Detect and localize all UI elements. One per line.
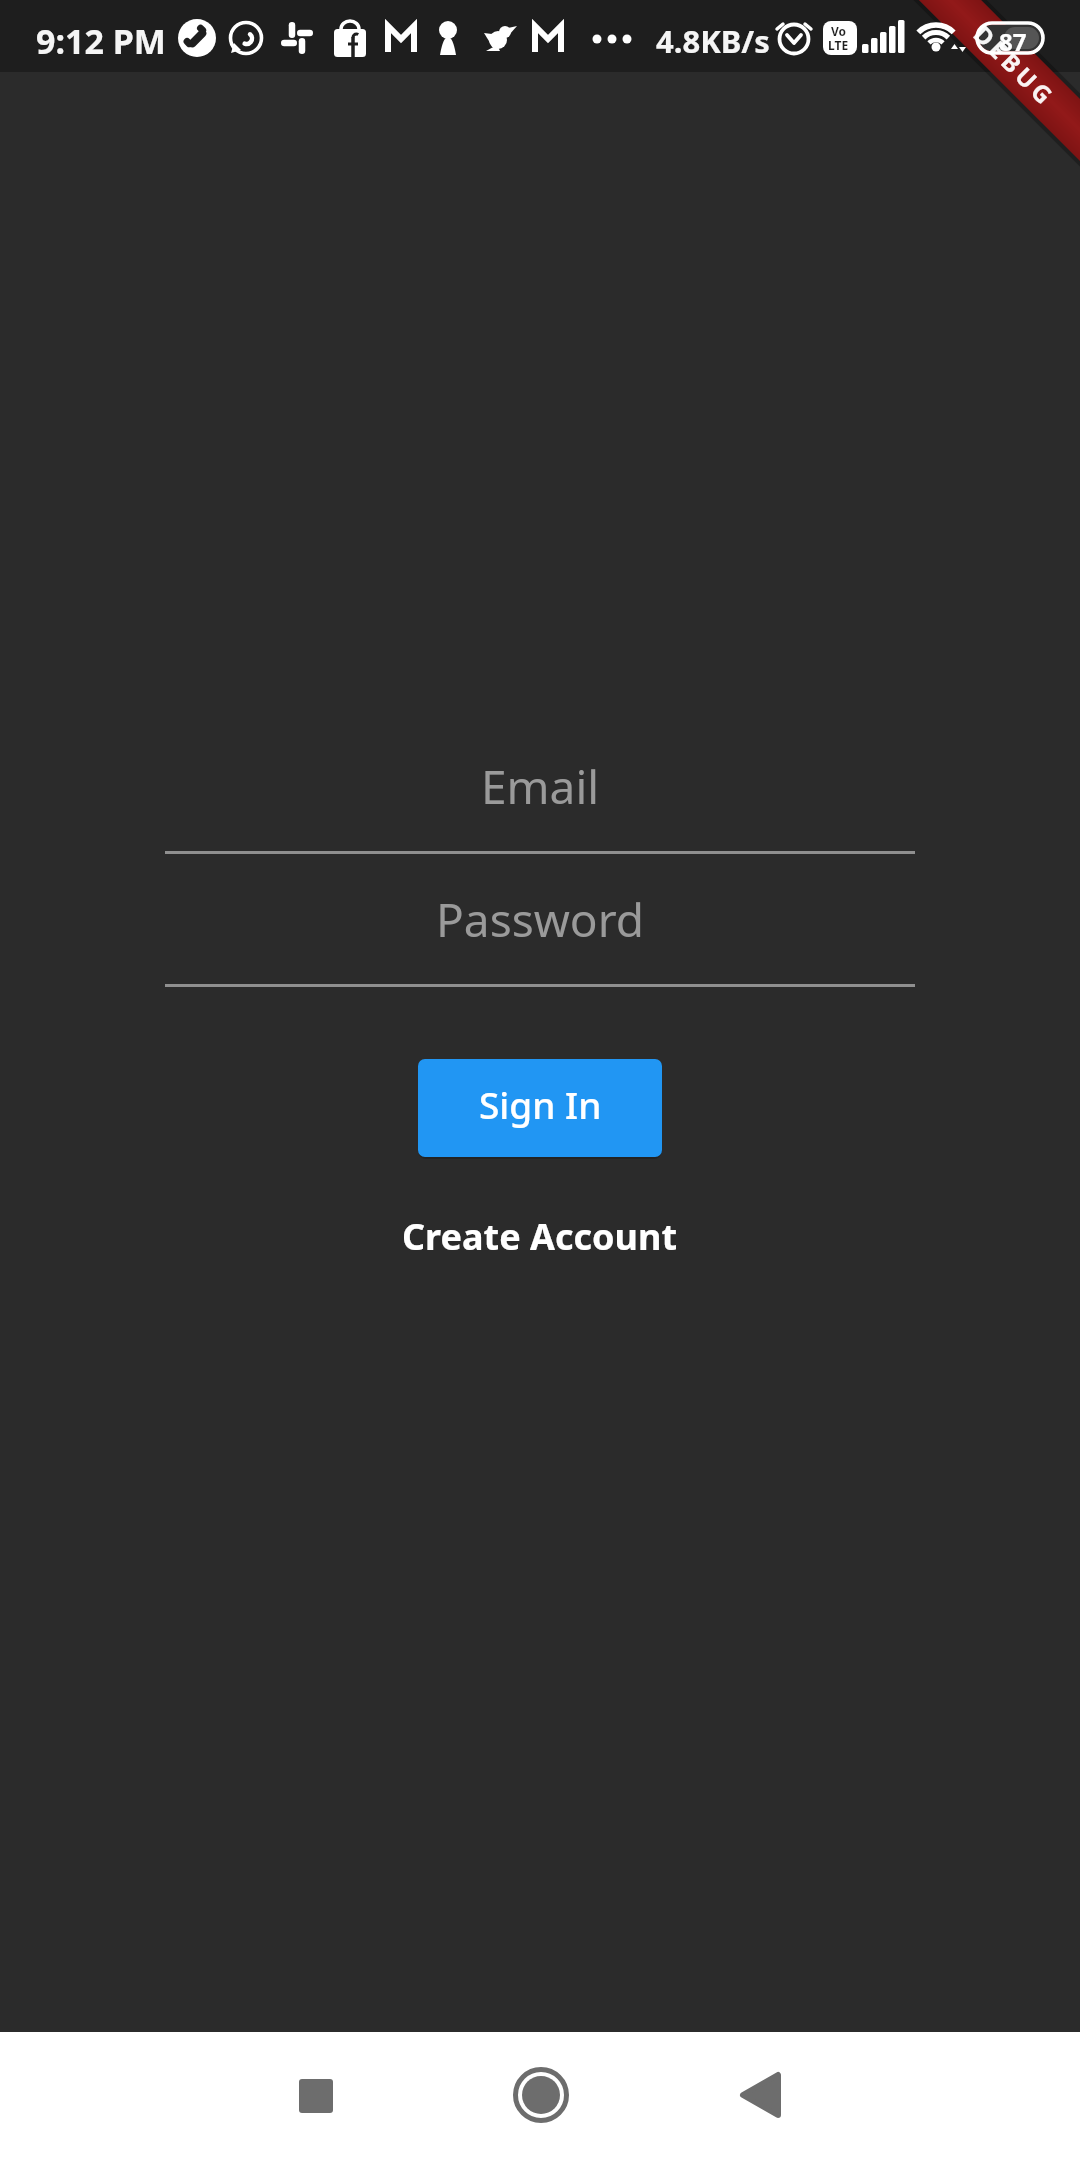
staticText: 9:12 PM <box>36 18 166 64</box>
button[interactable]: Create Account <box>402 1212 678 1261</box>
button[interactable] <box>288 2068 344 2124</box>
button[interactable] <box>513 2068 569 2124</box>
staticText: LTE <box>828 37 849 53</box>
staticText: DEBUG <box>967 18 1063 114</box>
button[interactable]: Sign In <box>418 1059 662 1157</box>
staticText: Sign In <box>479 1079 602 1129</box>
staticText: Vo <box>831 23 847 39</box>
button[interactable] <box>731 2068 787 2124</box>
staticText: Create Account <box>402 1212 678 1261</box>
staticText: Email <box>481 755 600 818</box>
staticText: Password <box>436 888 645 951</box>
staticText: 4.8KB/s <box>656 20 770 62</box>
staticText: 87 <box>999 25 1027 58</box>
